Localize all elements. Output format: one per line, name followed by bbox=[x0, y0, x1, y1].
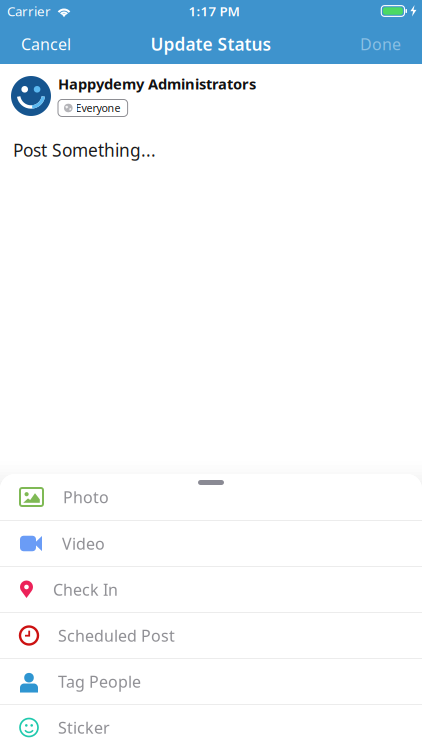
button[interactable]: Photo bbox=[0, 474, 422, 520]
staticText: 1:17 PM bbox=[188, 2, 239, 20]
button[interactable]: Video bbox=[0, 520, 422, 566]
staticText: Sticker bbox=[58, 717, 110, 738]
staticText: Photo bbox=[63, 486, 109, 508]
button[interactable]: Check In bbox=[0, 566, 422, 612]
staticText: Done bbox=[360, 33, 401, 55]
button[interactable]: Done bbox=[346, 22, 422, 64]
button[interactable]: Cancel bbox=[0, 22, 85, 64]
staticText: Post Something... bbox=[13, 138, 156, 161]
button[interactable]: Sticker bbox=[0, 704, 422, 750]
staticText: Tag People bbox=[58, 671, 141, 692]
button[interactable]: Tag People bbox=[0, 658, 422, 704]
staticText: Cancel bbox=[21, 33, 71, 55]
staticText: Happydemy Administrators bbox=[58, 74, 256, 93]
button[interactable]: Scheduled Post bbox=[0, 612, 422, 658]
staticText: Everyone bbox=[76, 101, 121, 115]
staticText: Video bbox=[62, 533, 105, 554]
staticText: Update Status bbox=[150, 32, 271, 55]
staticText: Carrier bbox=[7, 2, 51, 20]
staticText: Scheduled Post bbox=[58, 625, 175, 646]
button[interactable]: Everyone bbox=[58, 99, 128, 116]
staticText: Check In bbox=[53, 579, 118, 600]
